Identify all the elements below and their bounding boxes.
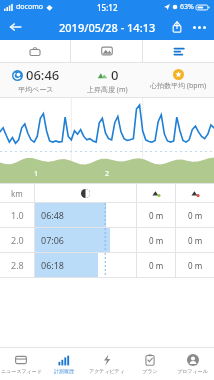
staticText: 06:48 [41, 209, 65, 221]
button[interactable] [0, 40, 70, 62]
staticText: アクティビティ [89, 368, 125, 374]
staticText: 平均ペース [18, 85, 54, 94]
staticText: 1.0 [11, 209, 24, 221]
staticText: プラン [142, 368, 158, 374]
button[interactable]: 2.8 [0, 253, 214, 277]
staticText: 0 m [188, 210, 203, 221]
staticText: 計測履歴 [54, 368, 74, 374]
staticText: 0 m [149, 260, 164, 271]
staticText: 06:18 [41, 259, 65, 271]
button[interactable]: 1.0 [0, 203, 214, 227]
button[interactable]: 06:46 [0, 63, 72, 97]
button[interactable]: プロフィール [171, 348, 214, 380]
staticText: km [11, 188, 23, 199]
button[interactable] [71, 40, 142, 62]
staticText: 2.8 [11, 259, 24, 271]
staticText: 1 [34, 169, 39, 179]
staticText: 0 m [149, 210, 164, 221]
button[interactable]: プラン [128, 348, 171, 380]
staticText: 07:06 [41, 234, 65, 246]
button[interactable]: 心拍数平均 (bpm) [143, 63, 214, 97]
button[interactable]: 0 [72, 63, 143, 97]
staticText: 15:12 [97, 2, 118, 13]
button[interactable]: ニュースフィード [0, 348, 42, 380]
staticText: 06:46 [26, 66, 60, 84]
button[interactable] [143, 40, 214, 62]
staticText: 上昇高度 (m) [87, 85, 128, 95]
staticText: 心拍数平均 (bpm) [150, 81, 207, 91]
staticText: 2.0 [11, 234, 24, 246]
staticText: プロフィール [177, 368, 208, 374]
button[interactable]: 2.0 [0, 228, 214, 252]
staticText: 2019/05/28 - 14:13 [59, 20, 156, 35]
staticText: 0 [111, 66, 119, 84]
staticText: 0 m [188, 235, 203, 246]
staticText: 2 [105, 169, 110, 179]
staticText: docomo [16, 2, 43, 12]
button[interactable]: Back [4, 16, 26, 38]
button[interactable]: アクティビティ [85, 348, 128, 380]
staticText: ニュースフィード [1, 368, 42, 374]
staticText: 63% [180, 2, 194, 12]
button[interactable]: 計測履歴 [42, 348, 85, 380]
button[interactable]: More options [188, 16, 210, 38]
staticText: 0 m [188, 260, 203, 271]
staticText: 0 m [149, 235, 164, 246]
button[interactable]: Share [166, 16, 188, 38]
